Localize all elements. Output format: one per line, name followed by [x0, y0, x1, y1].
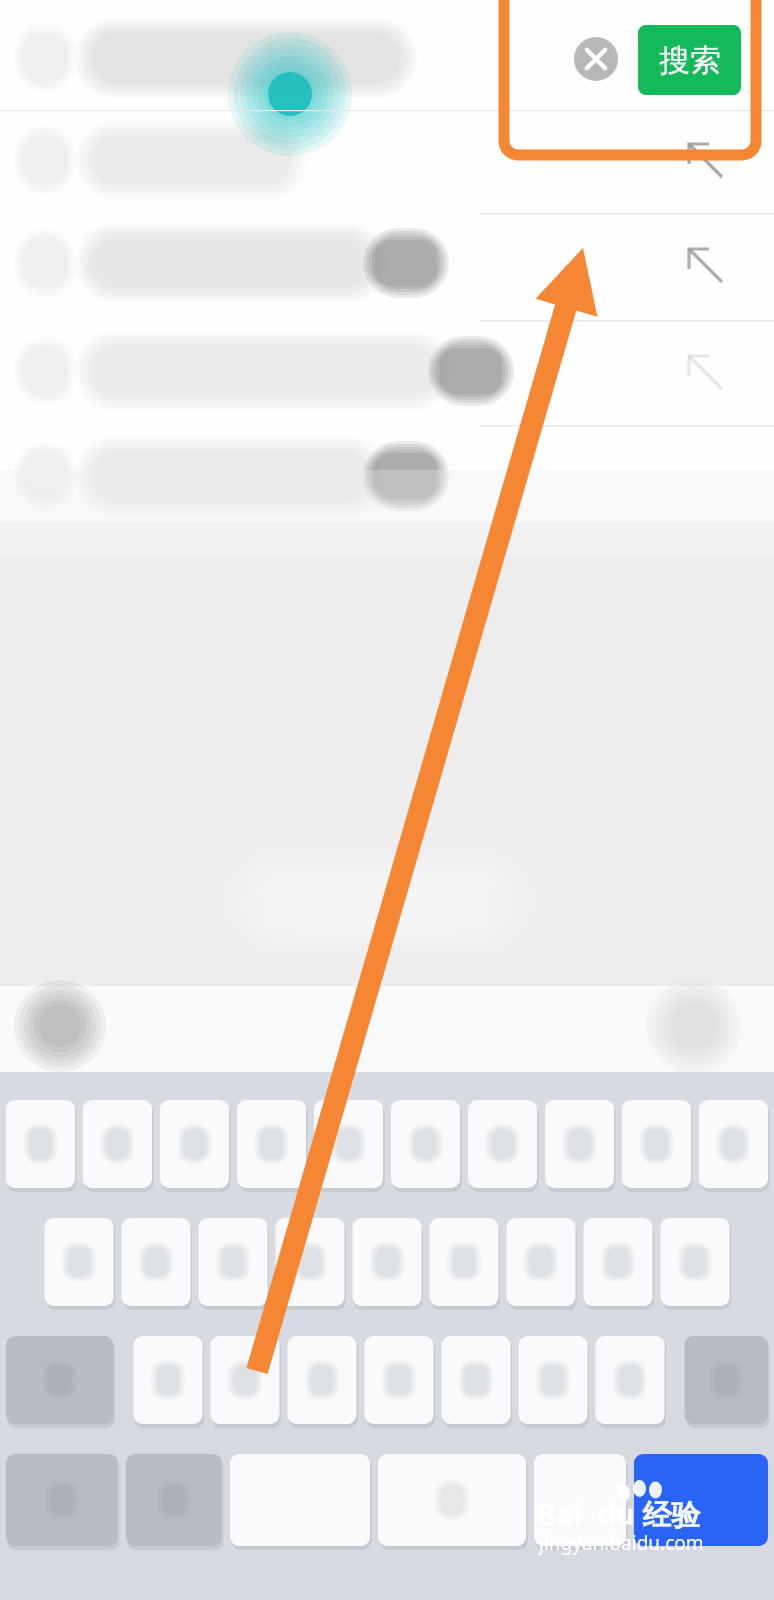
button[interactable]: Clear: [574, 37, 618, 81]
button[interactable]: 搜索: [638, 25, 741, 95]
staticText: Bai du 经验: [537, 1494, 701, 1534]
staticText: 搜索: [659, 41, 721, 80]
staticText: jingyan.baidu.com: [539, 1530, 704, 1556]
